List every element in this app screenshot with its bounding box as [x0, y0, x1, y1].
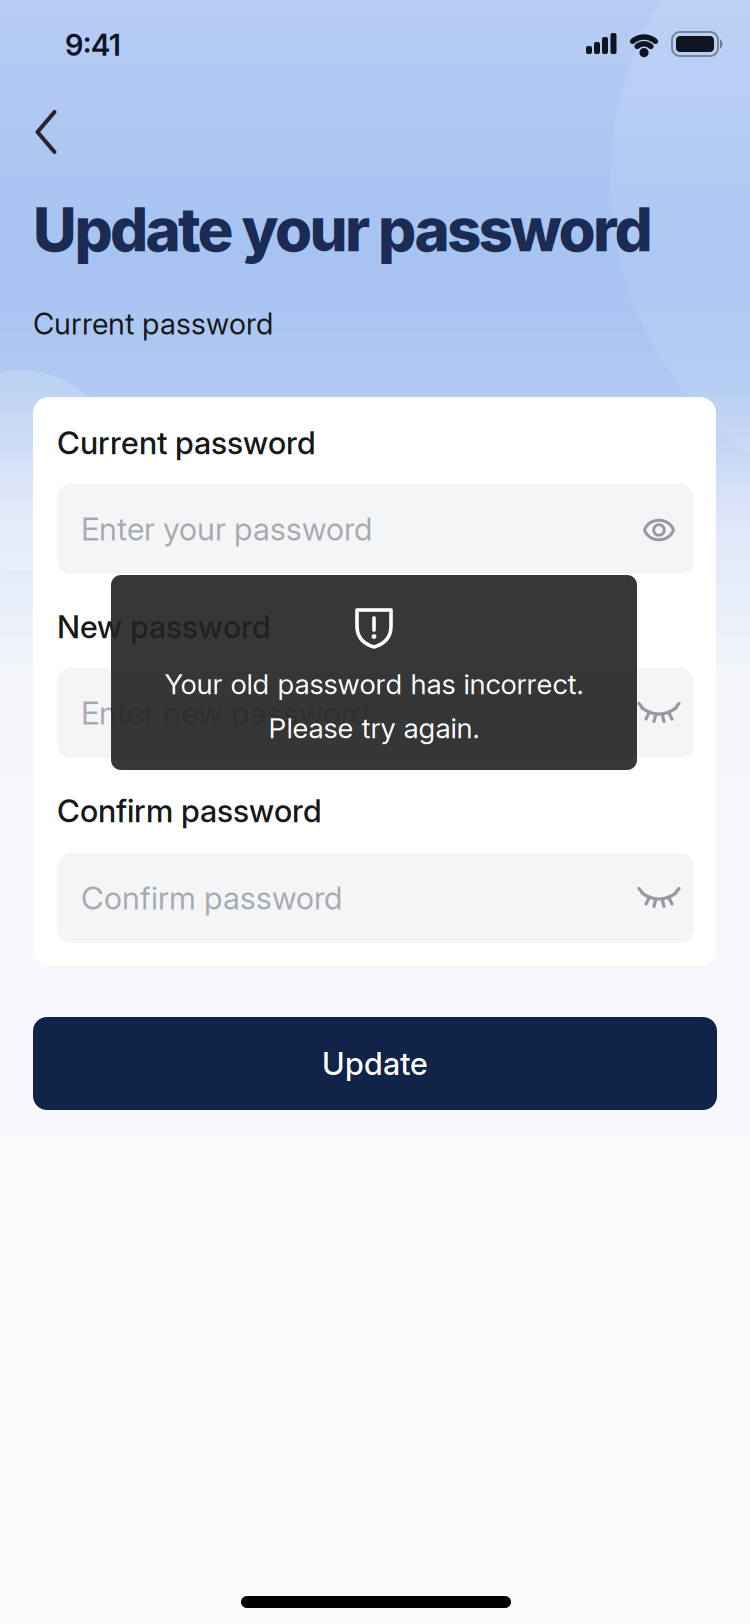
staticText: Current password	[33, 306, 273, 341]
staticText: Enter new password	[81, 694, 369, 732]
button[interactable]: Update	[33, 1017, 717, 1110]
staticText: Current password	[57, 424, 316, 462]
button[interactable]: Enter your password	[57, 484, 694, 574]
staticText: New password	[57, 608, 271, 646]
button[interactable]: Show new password	[637, 691, 681, 735]
button[interactable]: Back	[26, 101, 86, 161]
staticText: Update	[322, 1044, 428, 1082]
staticText: Confirm password	[57, 792, 322, 830]
staticText: Please try again.	[268, 711, 479, 745]
staticText: Your old password has incorrect.	[164, 667, 583, 701]
button[interactable]: Show password	[637, 508, 681, 552]
button[interactable]: Enter new password	[57, 668, 694, 758]
staticText: Enter your password	[81, 510, 372, 548]
button[interactable]: Show confirm password	[637, 876, 681, 920]
button[interactable]: Confirm password	[57, 853, 694, 943]
staticText: Update your password	[33, 193, 652, 266]
staticText: 9:41	[65, 27, 121, 63]
staticText: Confirm password	[81, 879, 342, 917]
